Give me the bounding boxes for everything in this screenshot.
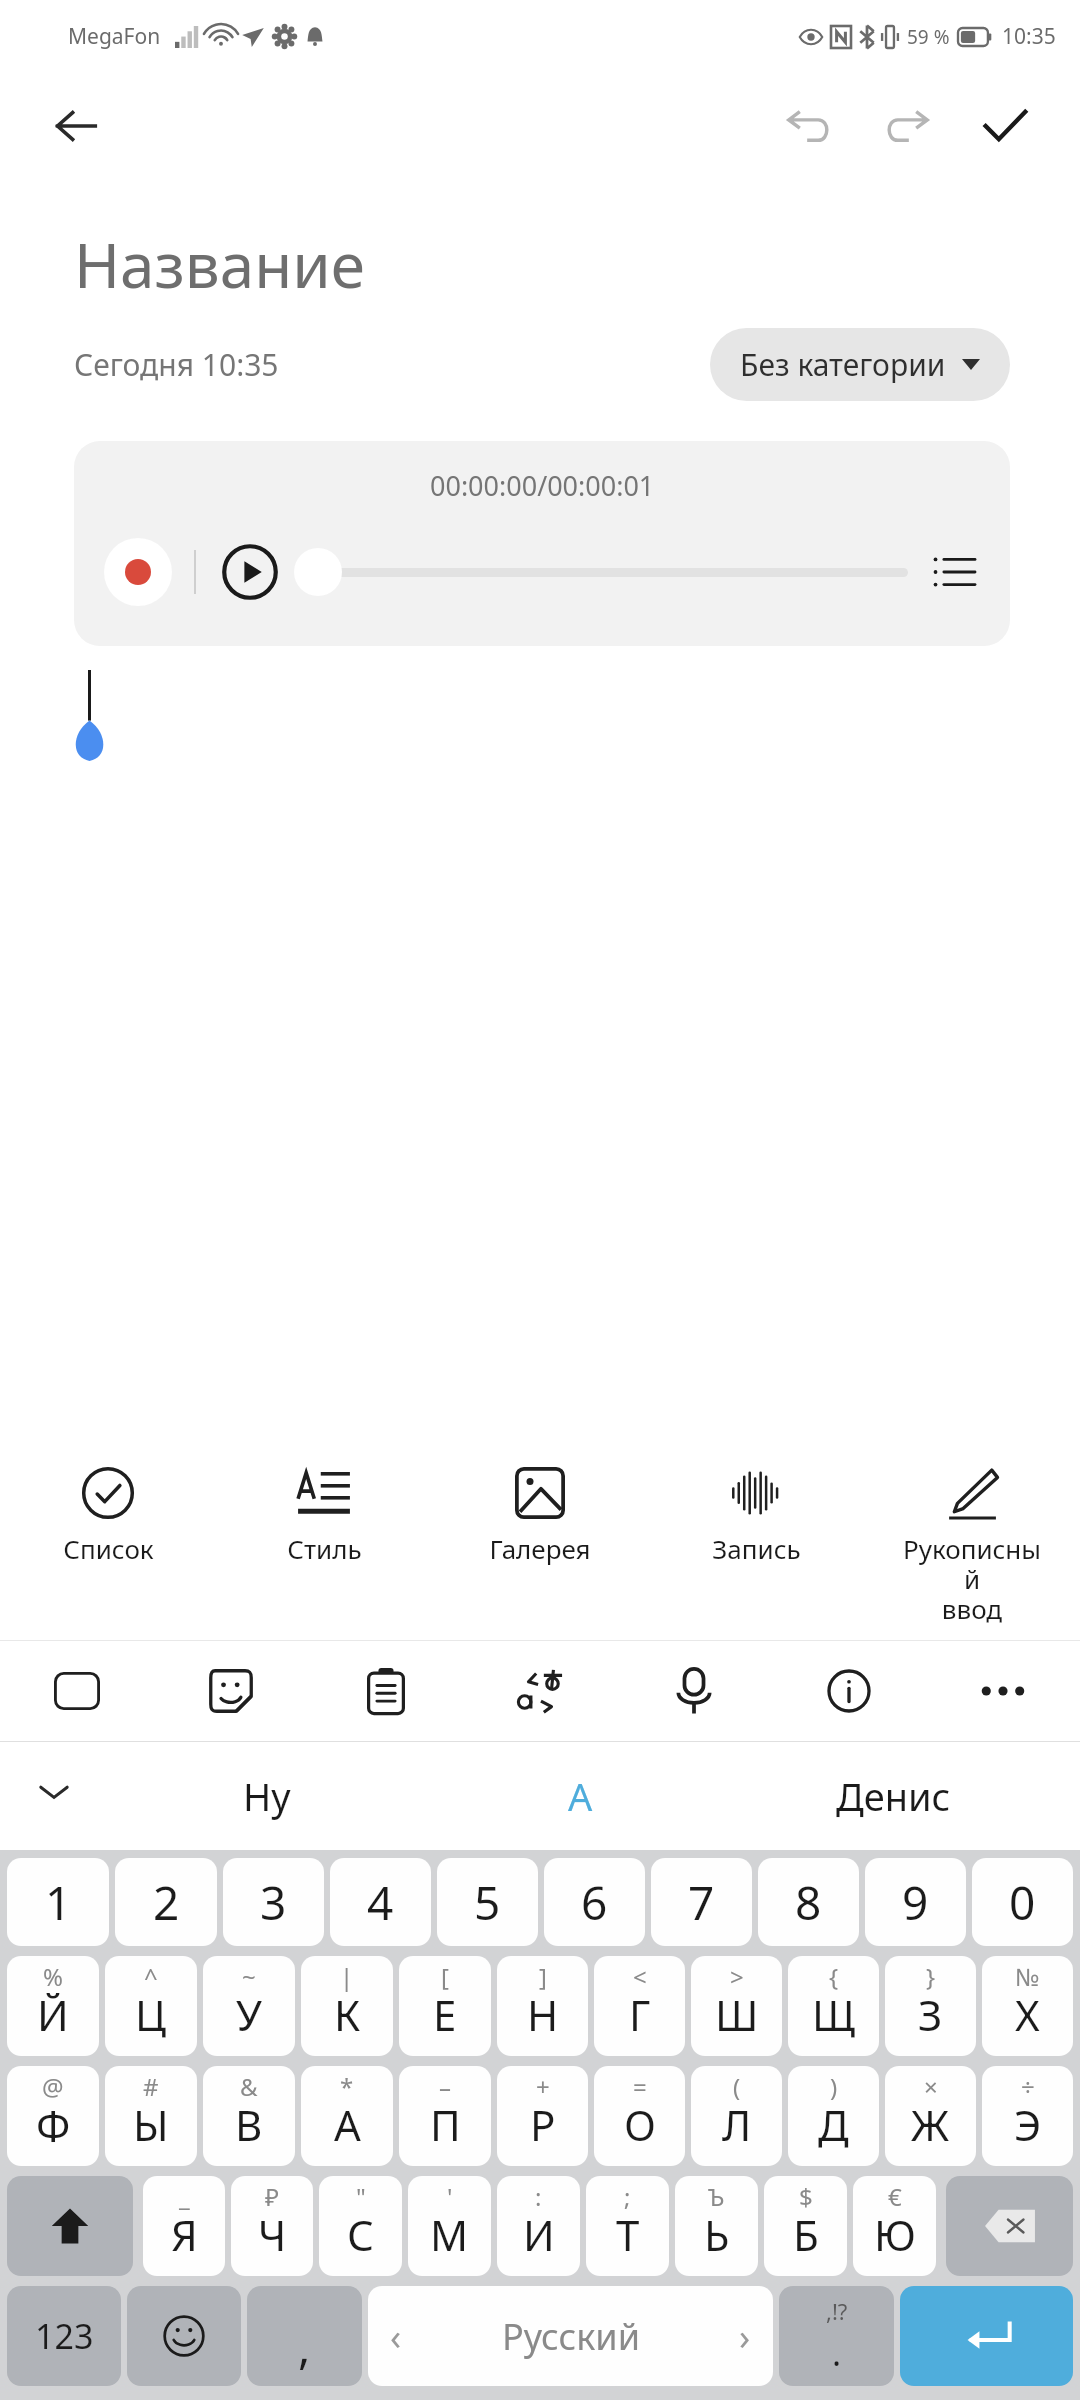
button[interactable]: ~	[203, 1956, 295, 2056]
staticText: 2	[153, 1871, 180, 1934]
button[interactable]: _	[143, 2176, 225, 2276]
button[interactable]: 7	[651, 1858, 752, 1946]
button[interactable]: ×	[885, 2066, 976, 2166]
button[interactable]: More	[955, 1643, 1051, 1739]
button[interactable]: Back	[40, 90, 112, 162]
button[interactable]: (	[691, 2066, 782, 2166]
staticText: Ф	[36, 2096, 71, 2153]
staticText: –	[439, 2070, 451, 2103]
button[interactable]: Collapse	[18, 1760, 90, 1832]
button[interactable]: Clipboard	[338, 1643, 434, 1739]
staticText: (	[733, 2070, 741, 2103]
staticText: Я	[171, 2206, 198, 2263]
button[interactable]: +	[497, 2066, 588, 2166]
staticText: .	[832, 2330, 842, 2376]
button[interactable]: *	[301, 2066, 393, 2166]
button[interactable]: #	[105, 2066, 197, 2166]
button[interactable]: ]	[497, 1956, 588, 2056]
staticText: 59 %	[907, 24, 950, 50]
button[interactable]: ÷	[982, 2066, 1073, 2166]
button[interactable]: Денис	[737, 1742, 1050, 1850]
button[interactable]: ;	[586, 2176, 669, 2276]
button[interactable]: 9	[865, 1858, 966, 1946]
button[interactable]: ,!?	[779, 2286, 894, 2386]
staticText: №	[1015, 1960, 1040, 1993]
staticText: [	[441, 1960, 449, 1993]
button[interactable]: ^	[105, 1956, 197, 2056]
button[interactable]: ,	[247, 2286, 362, 2386]
button[interactable]: Record	[104, 538, 172, 606]
button[interactable]: Запись	[686, 1459, 826, 1570]
button[interactable]: 4	[330, 1858, 431, 1946]
button[interactable]: Playlist	[924, 542, 984, 602]
button[interactable]: @	[7, 2066, 99, 2166]
button[interactable]: Space	[368, 2286, 773, 2386]
button[interactable]: &	[203, 2066, 295, 2166]
button[interactable]: Play	[220, 542, 280, 602]
button[interactable]: |	[301, 1956, 393, 2056]
button[interactable]: Без категории	[710, 328, 1010, 401]
staticText: "	[356, 2180, 366, 2213]
button[interactable]: Ъ	[675, 2176, 758, 2276]
button[interactable]: Ну	[110, 1742, 424, 1850]
staticText: Запись	[712, 1531, 801, 1566]
button[interactable]: :	[497, 2176, 580, 2276]
button[interactable]: GIF	[29, 1643, 125, 1739]
staticText: Д	[818, 2096, 849, 2153]
button[interactable]: €	[853, 2176, 936, 2276]
staticText: +	[536, 2070, 550, 2103]
button[interactable]: Redo	[868, 87, 946, 165]
button[interactable]: Done	[966, 87, 1044, 165]
staticText: И	[523, 2206, 555, 2263]
button[interactable]: –	[399, 2066, 491, 2166]
button[interactable]: Emoji	[127, 2286, 241, 2386]
button[interactable]: $	[764, 2176, 847, 2276]
button[interactable]: 2	[115, 1858, 217, 1946]
button[interactable]: Undo	[770, 87, 848, 165]
button[interactable]: 6	[544, 1858, 645, 1946]
button[interactable]: Галерея	[470, 1459, 610, 1570]
staticText: Г	[629, 1986, 651, 2043]
staticText: '	[447, 2180, 453, 2213]
button[interactable]: <	[594, 1956, 685, 2056]
button[interactable]: >	[691, 1956, 782, 2056]
button[interactable]: "	[319, 2176, 402, 2276]
button[interactable]: 3	[223, 1858, 324, 1946]
button[interactable]: %	[7, 1956, 99, 2056]
button[interactable]: 00:00:00/00:00:01	[74, 441, 1010, 646]
button[interactable]: Стиль	[254, 1459, 394, 1570]
button[interactable]: Enter	[900, 2286, 1073, 2386]
staticText: ,	[298, 2315, 311, 2378]
button[interactable]: {	[788, 1956, 879, 2056]
button[interactable]: №	[982, 1956, 1073, 2056]
button[interactable]: Рукописный ввод	[902, 1459, 1042, 1630]
button[interactable]: 123	[7, 2286, 121, 2386]
staticText: ₽	[265, 2180, 279, 2213]
button[interactable]: '	[408, 2176, 491, 2276]
button[interactable]: 5	[437, 1858, 538, 1946]
button[interactable]: 1	[7, 1858, 109, 1946]
button[interactable]: Info	[801, 1643, 897, 1739]
button[interactable]: А	[424, 1742, 737, 1850]
button[interactable]: Список	[38, 1459, 178, 1570]
button[interactable]: Backspace	[946, 2176, 1073, 2276]
staticText: Ь	[704, 2206, 730, 2263]
button[interactable]: Shift	[7, 2176, 133, 2276]
staticText: 9	[902, 1871, 929, 1934]
button[interactable]: [	[399, 1956, 491, 2056]
button[interactable]: Sticker	[183, 1643, 279, 1739]
button[interactable]: }	[885, 1956, 976, 2056]
staticText: Ж	[911, 2096, 950, 2153]
button[interactable]: 8	[758, 1858, 859, 1946]
button[interactable]: ₽	[231, 2176, 313, 2276]
staticText: MegaFon	[68, 22, 161, 51]
button[interactable]: )	[788, 2066, 879, 2166]
staticText: 1	[45, 1871, 72, 1934]
staticText: 8	[795, 1871, 822, 1934]
button[interactable]: =	[594, 2066, 685, 2166]
button[interactable]: 0	[972, 1858, 1073, 1946]
button[interactable]: Translate	[492, 1643, 588, 1739]
button[interactable]: Voice input	[646, 1643, 742, 1739]
staticText: *	[340, 2070, 354, 2103]
staticText: 123	[35, 2313, 94, 2359]
